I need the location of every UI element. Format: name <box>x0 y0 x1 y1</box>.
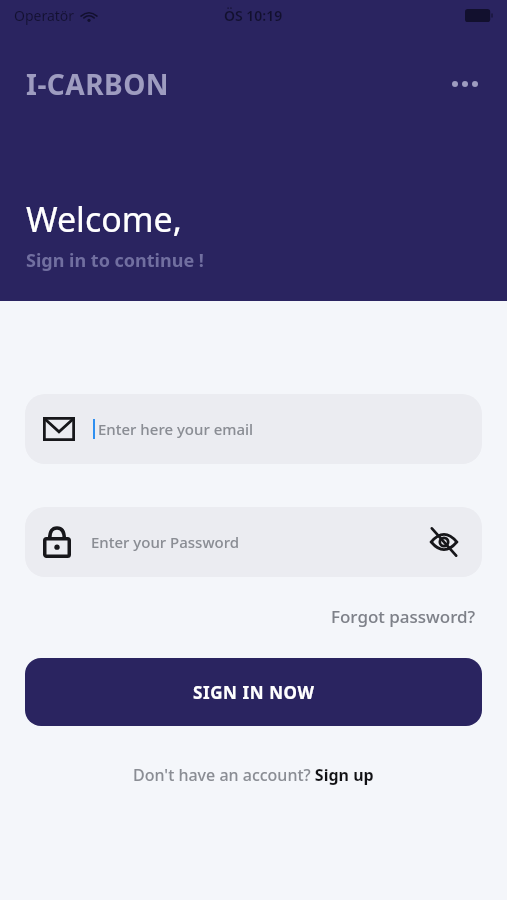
button[interactable]: Don't have an account? Sign up <box>127 758 380 792</box>
button[interactable]: Forgot password? <box>325 599 482 634</box>
button[interactable]: Show password <box>424 522 464 562</box>
button[interactable]: SIGN IN NOW <box>25 658 482 726</box>
staticText: I-CARBON <box>26 65 170 103</box>
staticText: SIGN IN NOW <box>193 681 315 704</box>
staticText: Welcome, <box>26 196 182 242</box>
button[interactable]: Enter here your email <box>25 394 482 464</box>
staticText: ÖS 10:19 <box>224 6 283 25</box>
button[interactable]: More options <box>443 62 487 106</box>
staticText: Enter here your email <box>98 419 254 439</box>
staticText: Don't have an account? Sign up <box>133 764 374 786</box>
staticText: Forgot password? <box>331 605 476 628</box>
staticText: Operatör <box>14 6 75 25</box>
staticText: Sign in to continue ! <box>26 248 204 273</box>
button[interactable]: Enter your Password <box>25 507 482 577</box>
staticText: Enter your Password <box>91 532 240 552</box>
